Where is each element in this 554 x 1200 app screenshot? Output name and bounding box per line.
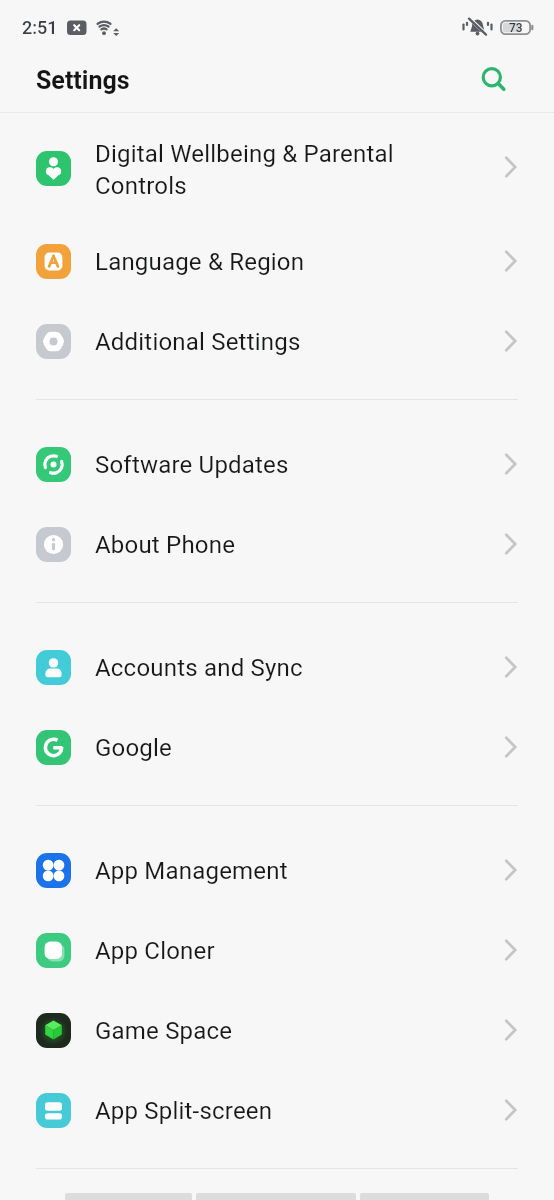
staticText: App Split-screen <box>95 1097 273 1125</box>
staticText: Game Space <box>95 1017 233 1045</box>
button[interactable]: Game Space <box>0 990 554 1070</box>
button[interactable]: App Split-screen <box>0 1070 554 1150</box>
button[interactable]: App Management <box>0 830 554 910</box>
staticText: About Phone <box>95 531 236 559</box>
button[interactable]: Digital Wellbeing & Parental Controls <box>0 113 554 221</box>
button[interactable]: Software Updates <box>0 424 554 504</box>
button[interactable]: About Phone <box>0 504 554 584</box>
staticText: 73 <box>509 21 523 35</box>
staticText: Settings <box>36 66 130 95</box>
button[interactable] <box>481 67 507 93</box>
staticText: 2:51 <box>22 17 58 38</box>
button[interactable]: Accounts and Sync <box>0 627 554 707</box>
button[interactable]: App Cloner <box>0 910 554 990</box>
button[interactable]: Additional Settings <box>0 301 554 381</box>
staticText: App Management <box>95 857 288 885</box>
staticText: Additional Settings <box>95 328 301 356</box>
button[interactable]: Language & Region <box>0 221 554 301</box>
staticText: Language & Region <box>95 248 305 276</box>
staticText: Accounts and Sync <box>95 654 303 682</box>
staticText: App Cloner <box>95 937 215 965</box>
staticText: Google <box>95 734 172 762</box>
staticText: Software Updates <box>95 451 289 479</box>
staticText: Digital Wellbeing & Parental Controls <box>95 140 394 200</box>
button[interactable]: Google <box>0 707 554 787</box>
